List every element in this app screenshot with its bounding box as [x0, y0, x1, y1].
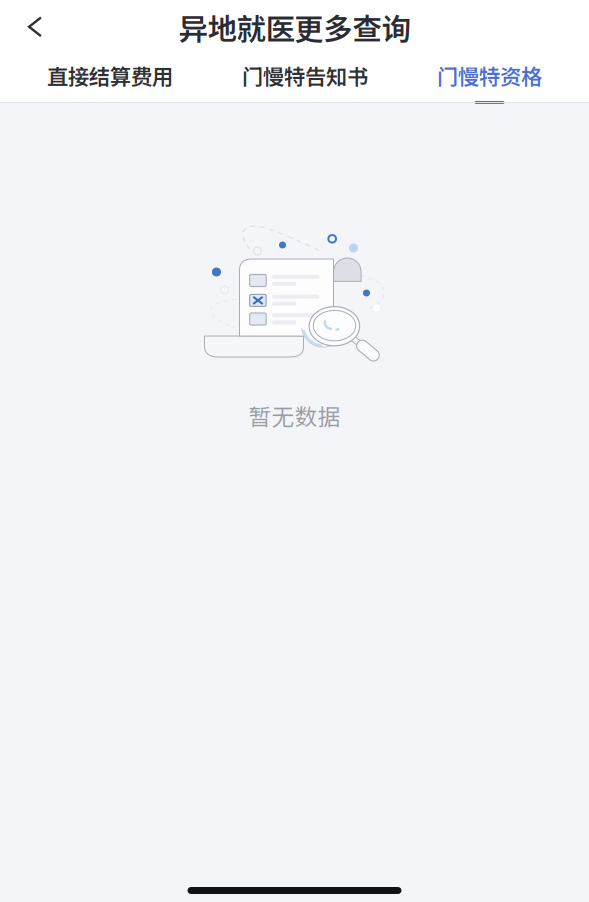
- button[interactable]: 门慢特告知书: [228, 54, 382, 102]
- staticText: 门慢特告知书: [242, 60, 368, 91]
- staticText: 直接结算费用: [47, 60, 173, 91]
- button[interactable]: 直接结算费用: [33, 54, 187, 102]
- button[interactable]: Back: [12, 4, 58, 50]
- button[interactable]: 门慢特资格: [423, 54, 556, 102]
- staticText: 异地就医更多查询: [178, 6, 410, 48]
- staticText: 暂无数据: [248, 399, 340, 432]
- staticText: 门慢特资格: [437, 60, 542, 91]
